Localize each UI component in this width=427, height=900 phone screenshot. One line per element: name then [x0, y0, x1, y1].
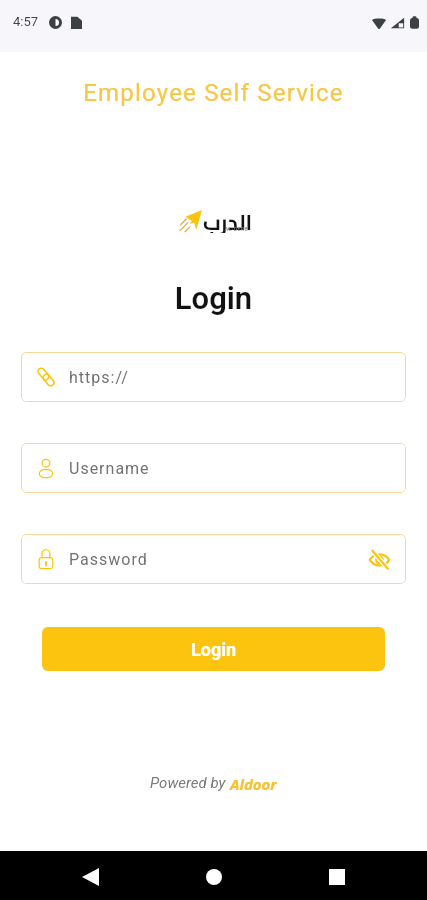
staticText: Login: [191, 639, 237, 660]
staticText: Aldoor: [230, 774, 277, 794]
staticText: الدرب: [203, 203, 253, 233]
button[interactable]: Home: [190, 853, 238, 900]
button[interactable]: Back: [66, 853, 114, 900]
staticText: 4:57: [13, 14, 39, 29]
staticText: AL-DERB: [225, 226, 249, 232]
button[interactable]: Show password: [366, 546, 392, 572]
button[interactable]: Login: [42, 627, 385, 671]
staticText: https://: [69, 368, 129, 387]
staticText: Powered by: [150, 774, 230, 792]
button[interactable]: https://: [21, 352, 406, 402]
button[interactable]: Username: [21, 443, 406, 493]
staticText: Password: [69, 550, 148, 569]
staticText: Login: [0, 280, 427, 316]
staticText: Username: [69, 459, 150, 478]
staticText: Employee Self Service: [0, 79, 427, 107]
button[interactable]: Recent apps: [313, 853, 361, 900]
button[interactable]: Password: [21, 534, 406, 584]
